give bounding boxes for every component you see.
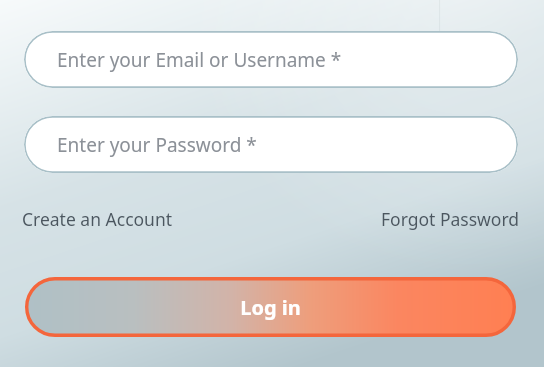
button[interactable]: Log in <box>25 277 516 337</box>
staticText: Enter your Password * <box>57 132 257 158</box>
button[interactable]: Create an Account <box>22 205 173 233</box>
button[interactable]: Enter your Password * <box>24 116 518 173</box>
staticText: Create an Account <box>22 207 173 231</box>
staticText: Forgot Password <box>381 207 520 231</box>
staticText: Enter your Email or Username * <box>57 47 342 73</box>
staticText: Log in <box>240 294 301 321</box>
button[interactable]: Enter your Email or Username * <box>24 31 518 88</box>
button[interactable]: Forgot Password <box>381 205 520 233</box>
